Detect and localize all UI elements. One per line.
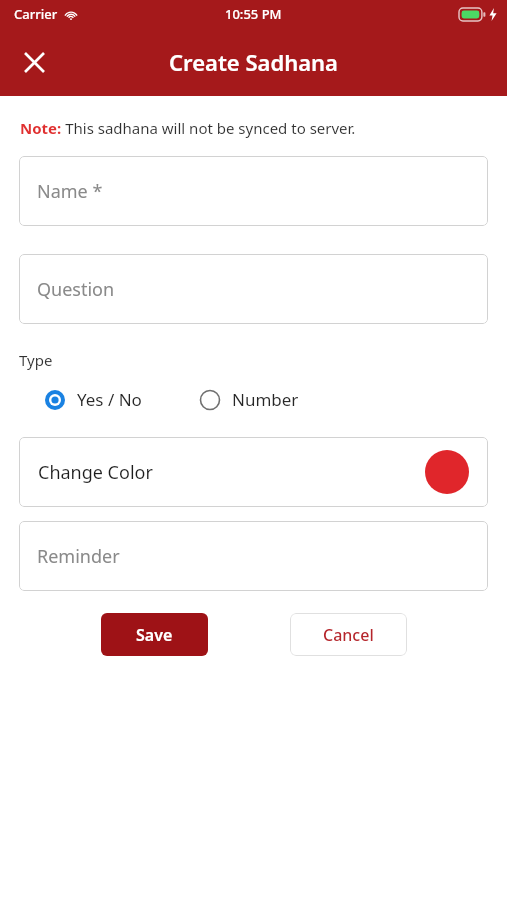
staticText: Cancel	[323, 624, 374, 646]
staticText: Question	[37, 277, 115, 302]
staticText: Reminder	[37, 544, 120, 569]
button[interactable]: Question	[19, 254, 488, 324]
button[interactable]: Save	[101, 613, 208, 656]
staticText: Type	[19, 350, 53, 370]
button[interactable]: Close	[10, 38, 58, 86]
staticText: Create Sadhana	[169, 47, 338, 77]
staticText: Save	[136, 624, 173, 646]
staticText: 10:55 PM	[225, 5, 282, 23]
button[interactable]: Change Color	[19, 437, 488, 507]
staticText: Change Color	[38, 460, 153, 485]
button[interactable]: Cancel	[290, 613, 407, 656]
button[interactable]: Reminder	[19, 521, 488, 591]
button[interactable]: Yes / No	[19, 384, 146, 415]
button[interactable]: Number	[174, 384, 303, 415]
button[interactable]: Name *	[19, 156, 488, 226]
staticText: Number	[232, 388, 299, 411]
staticText: Carrier	[14, 5, 58, 23]
staticText: Name *	[37, 179, 103, 204]
staticText: Yes / No	[77, 388, 142, 411]
staticText: Note: This sadhana will not be synced to…	[20, 118, 356, 138]
